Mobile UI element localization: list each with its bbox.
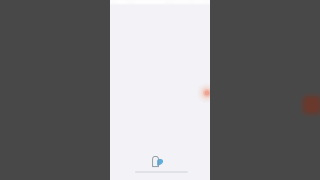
button[interactable]: Open [197,83,217,103]
button[interactable]: Favorites [151,155,164,168]
